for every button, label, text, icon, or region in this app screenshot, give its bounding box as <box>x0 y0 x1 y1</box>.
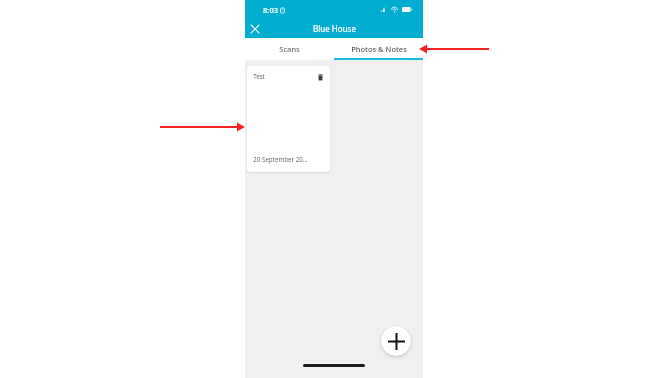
staticText: 8:03 <box>263 5 278 15</box>
button[interactable]: Add <box>381 326 411 356</box>
button[interactable]: Test <box>247 66 330 172</box>
button[interactable]: Photos & Notes <box>334 38 423 60</box>
staticText: Photos & Notes <box>351 44 407 54</box>
staticText: Scans <box>279 44 300 54</box>
staticText: Blue House <box>313 23 356 34</box>
button[interactable]: Scans <box>245 38 334 60</box>
button[interactable]: Close <box>245 19 264 38</box>
staticText: 20 September 20... <box>253 155 308 163</box>
button[interactable]: Delete <box>315 72 326 83</box>
staticText: Test <box>253 72 265 80</box>
